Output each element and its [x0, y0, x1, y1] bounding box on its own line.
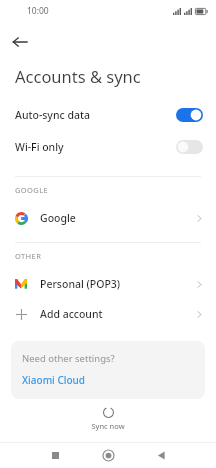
button[interactable]: Personal (POP3): [0, 269, 216, 299]
staticText: GOOGLE: [15, 185, 49, 195]
staticText: Google: [40, 211, 195, 225]
button[interactable]: Wi-Fi only: [0, 131, 216, 163]
staticText: 10:00: [27, 5, 49, 17]
button[interactable]: Recent apps: [42, 442, 68, 468]
staticText: Xiaomi Cloud: [22, 373, 86, 387]
staticText: Personal (POP3): [40, 277, 195, 291]
staticText: Add account: [40, 307, 195, 321]
staticText: OTHER: [15, 251, 42, 261]
staticText: Accounts & sync: [15, 65, 141, 87]
button[interactable]: Auto-sync data: [0, 99, 216, 131]
staticText: Sync now: [91, 421, 125, 431]
staticText: Auto-sync data: [15, 108, 176, 122]
button[interactable]: Google: [0, 203, 216, 233]
button[interactable]: Add account: [0, 299, 216, 329]
button[interactable]: Xiaomi Cloud: [22, 373, 86, 387]
staticText: Need other settings?: [22, 352, 115, 365]
button[interactable]: Sync now: [79, 404, 137, 434]
button[interactable]: Home: [95, 442, 121, 468]
button[interactable]: Back: [148, 442, 174, 468]
staticText: Wi-Fi only: [15, 140, 176, 154]
button[interactable]: Back: [0, 22, 40, 62]
